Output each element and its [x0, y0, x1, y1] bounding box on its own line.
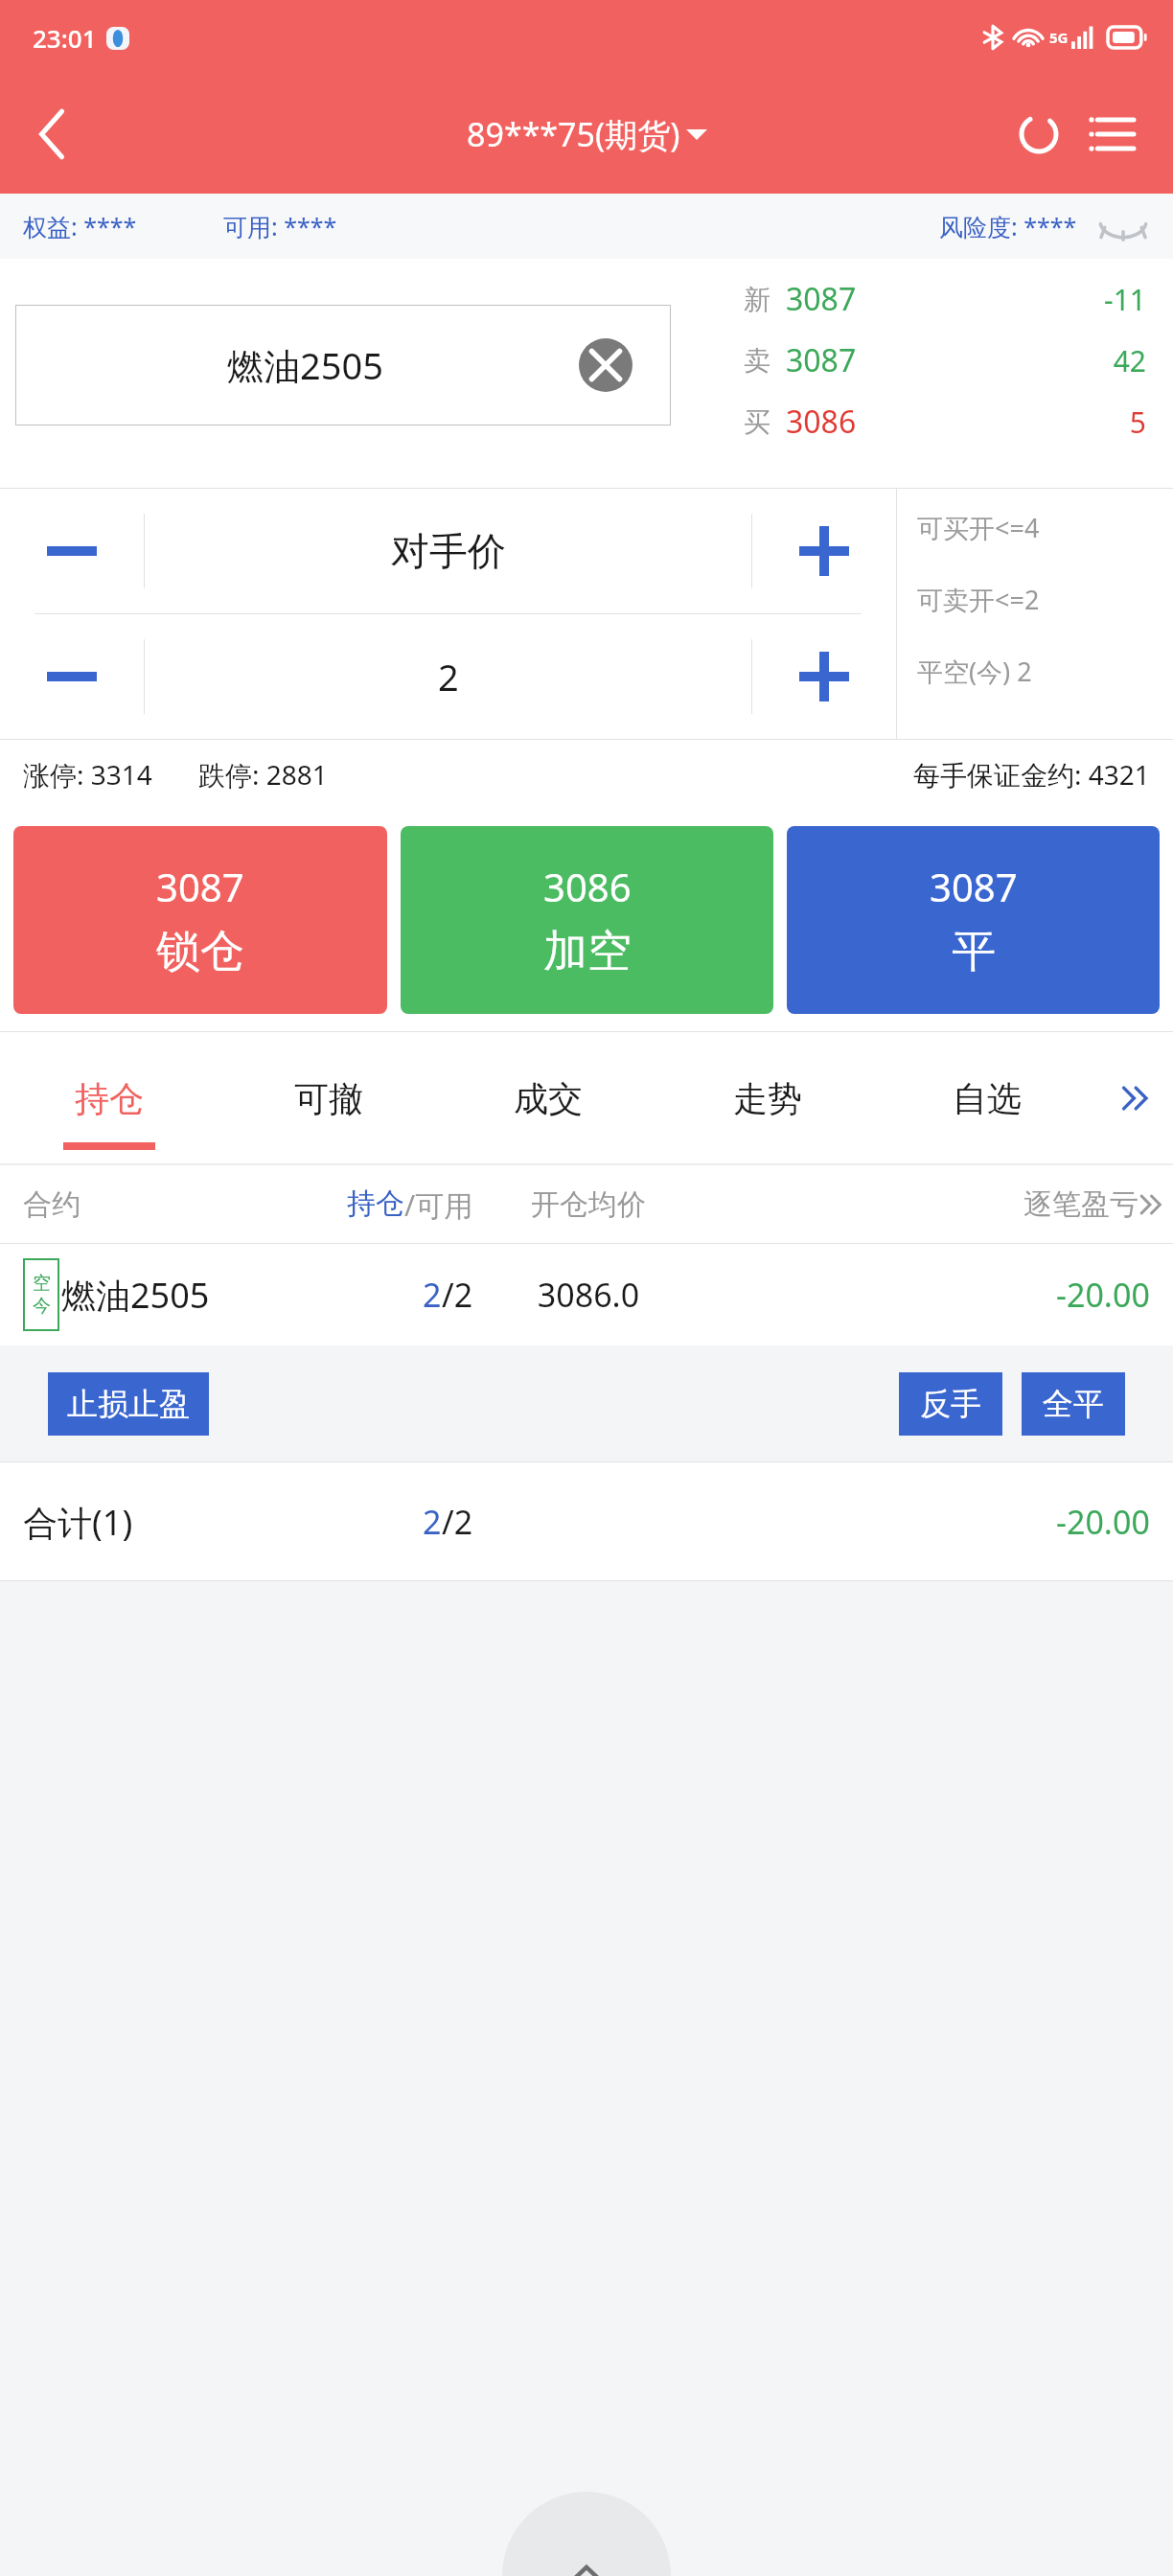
- staticText: 3087: [786, 278, 901, 320]
- button[interactable]: Increase: [752, 489, 896, 613]
- staticText: 5G: [1049, 28, 1069, 47]
- staticText: 42: [1058, 341, 1146, 380]
- staticText: 可撤: [294, 1077, 363, 1120]
- button[interactable]: More tabs: [1096, 1031, 1173, 1165]
- staticText: 开仓均价: [493, 1186, 684, 1223]
- staticText: 权益: ****: [23, 210, 137, 242]
- staticText: 2: [438, 652, 459, 701]
- staticText: 3087: [786, 339, 901, 381]
- staticText: 逐笔盈亏: [1023, 1186, 1138, 1223]
- staticText: 全平: [1043, 1385, 1104, 1423]
- button[interactable]: Toggle visibility: [1096, 205, 1150, 247]
- staticText: -20.00: [1056, 1500, 1150, 1544]
- staticText: 锁仓: [156, 924, 244, 979]
- button[interactable]: 3087: [13, 826, 387, 1014]
- staticText: 风险度: ****: [939, 210, 1077, 242]
- staticText: 89***75(期货): [467, 112, 680, 156]
- button[interactable]: 89***75(期货): [467, 112, 707, 156]
- button[interactable]: 3087: [787, 826, 1160, 1014]
- staticText: 平空(今) 2: [917, 654, 1032, 689]
- staticText: 卖: [713, 344, 770, 378]
- button[interactable]: Expand panel: [502, 2492, 671, 2576]
- staticText: 持仓: [75, 1077, 144, 1120]
- staticText: -11: [1058, 280, 1146, 319]
- staticText: 燃油2505: [61, 1272, 210, 1319]
- staticText: 3086: [786, 401, 901, 443]
- staticText: 3087: [930, 861, 1018, 912]
- staticText: 走势: [733, 1077, 802, 1120]
- staticText: 空: [33, 1272, 51, 1295]
- staticText: /2: [442, 1500, 473, 1544]
- button[interactable]: 持仓: [0, 1031, 218, 1165]
- button[interactable]: 成交: [438, 1031, 657, 1165]
- staticText: 合计(1): [23, 1499, 234, 1546]
- button[interactable]: 反手: [899, 1372, 1002, 1436]
- staticText: 5: [1058, 402, 1146, 442]
- button[interactable]: 全平: [1022, 1372, 1125, 1436]
- button[interactable]: Increase: [752, 614, 896, 739]
- staticText: 可买开<=4: [917, 510, 1040, 545]
- staticText: 买: [713, 405, 770, 439]
- button[interactable]: 止损止盈: [48, 1372, 209, 1436]
- staticText: 合约: [23, 1186, 234, 1223]
- staticText: 对手价: [391, 527, 506, 575]
- staticText: 跌停: 2881: [198, 756, 328, 793]
- staticText: 2: [423, 1273, 442, 1317]
- button[interactable]: 燃油2505: [15, 305, 671, 425]
- staticText: /2: [442, 1273, 473, 1317]
- staticText: 今: [33, 1295, 51, 1318]
- staticText: 成交: [514, 1077, 583, 1120]
- button[interactable]: 可撤: [218, 1031, 438, 1165]
- button[interactable]: Back: [0, 75, 105, 194]
- staticText: 可卖开<=2: [917, 582, 1040, 617]
- staticText: 新: [713, 283, 770, 316]
- button[interactable]: 自选: [877, 1031, 1096, 1165]
- button[interactable]: Decrease: [0, 489, 144, 613]
- button[interactable]: Refresh: [1002, 98, 1075, 171]
- button[interactable]: 走势: [657, 1031, 877, 1165]
- staticText: 涨停: 3314: [23, 756, 152, 793]
- staticText: 2: [423, 1500, 442, 1544]
- staticText: 持仓: [347, 1185, 404, 1222]
- button[interactable]: Menu: [1075, 98, 1148, 171]
- staticText: -20.00: [1056, 1273, 1150, 1317]
- button[interactable]: 空: [0, 1244, 1173, 1345]
- staticText: 23:01: [33, 21, 97, 55]
- button[interactable]: 对手价: [145, 489, 751, 613]
- button[interactable]: Decrease: [0, 614, 144, 739]
- staticText: 自选: [953, 1077, 1022, 1120]
- button[interactable]: Clear: [579, 338, 632, 392]
- staticText: /可用: [404, 1185, 473, 1225]
- staticText: 可用: ****: [223, 210, 337, 242]
- staticText: 反手: [920, 1385, 981, 1423]
- staticText: 3087: [156, 861, 244, 912]
- button[interactable]: 2: [145, 614, 751, 739]
- staticText: 止损止盈: [67, 1385, 190, 1423]
- staticText: 3086.0: [493, 1273, 684, 1317]
- staticText: 燃油2505: [227, 340, 383, 390]
- staticText: 平: [952, 924, 996, 979]
- staticText: 加空: [543, 924, 632, 979]
- button[interactable]: 3086: [401, 826, 773, 1014]
- staticText: 3086: [543, 861, 632, 912]
- staticText: 每手保证金约: 4321: [913, 756, 1150, 793]
